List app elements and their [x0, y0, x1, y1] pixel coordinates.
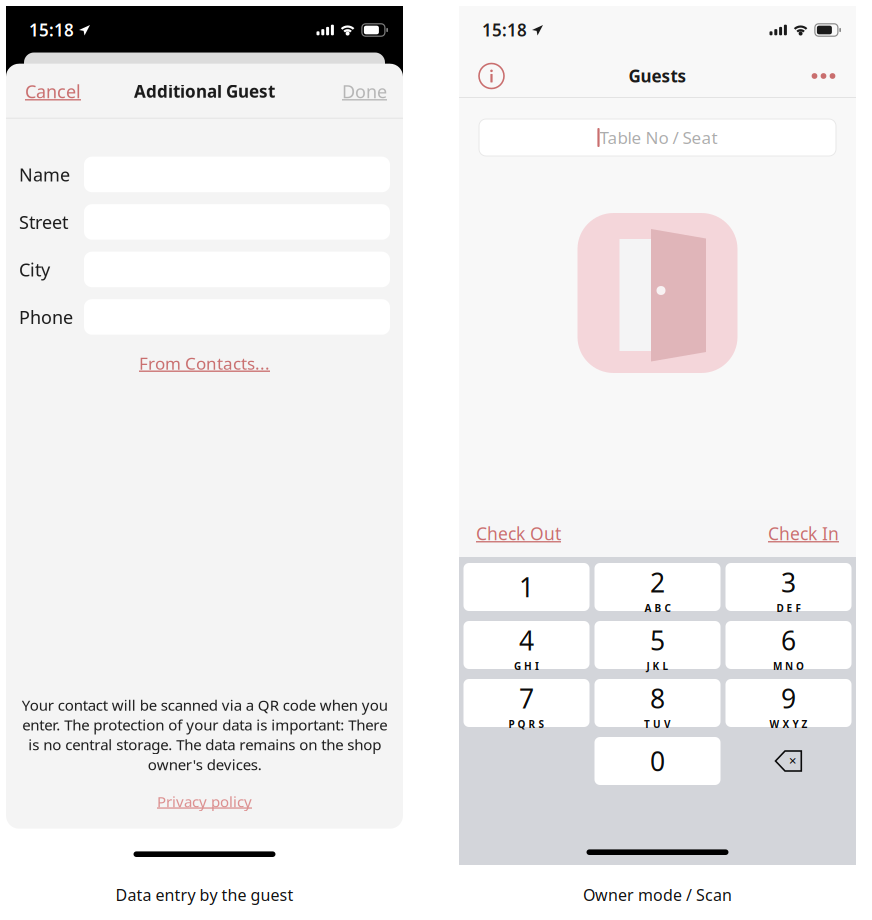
button[interactable]: More options: [810, 62, 837, 89]
staticText: 3: [781, 564, 796, 600]
staticText: 1: [519, 569, 534, 605]
button[interactable]: 4: [463, 621, 589, 669]
staticText: Check In: [768, 522, 839, 545]
button[interactable]: 0: [594, 737, 720, 785]
staticText: 6: [781, 622, 796, 658]
staticText: W X Y Z: [769, 717, 807, 731]
staticText: From Contacts...: [139, 352, 270, 375]
staticText: D E F: [776, 601, 800, 615]
staticText: 9: [781, 680, 796, 716]
button[interactable]: Information: [478, 62, 505, 89]
staticText: Additional Guest: [134, 80, 275, 103]
staticText: G H I: [514, 659, 539, 673]
staticText: ✕: [788, 755, 796, 767]
staticText: P Q R S: [508, 717, 544, 731]
staticText: Owner mode / Scan: [583, 884, 732, 906]
staticText: Guests: [628, 64, 686, 88]
button[interactable]: 7: [463, 679, 589, 727]
staticText: M N O: [773, 659, 804, 673]
staticText: 15:18: [29, 18, 74, 42]
staticText: Phone: [19, 305, 73, 329]
staticText: Table No / Seat: [600, 126, 718, 149]
button[interactable]: 5: [594, 621, 720, 669]
staticText: A B C: [644, 601, 670, 615]
staticText: Check Out: [476, 522, 561, 545]
button[interactable]: 3: [725, 563, 851, 611]
staticText: Your contact will be scanned via a QR co…: [21, 695, 387, 774]
staticText: Street: [19, 210, 68, 234]
staticText: Data entry by the guest: [115, 884, 293, 906]
button[interactable]: 2: [594, 563, 720, 611]
staticText: 8: [650, 680, 665, 716]
button[interactable]: Check Out: [475, 513, 561, 554]
button[interactable]: Cancel: [25, 69, 87, 113]
button[interactable]: From Contacts...: [133, 347, 276, 380]
staticText: 7: [519, 680, 534, 716]
staticText: Cancel: [25, 79, 81, 103]
button[interactable]: 8: [594, 679, 720, 727]
staticText: 0: [650, 743, 665, 779]
staticText: T U V: [644, 717, 671, 731]
staticText: J K L: [646, 659, 668, 673]
button[interactable]: Privacy policy: [151, 786, 258, 817]
button[interactable]: Delete: [725, 737, 851, 785]
staticText: 5: [650, 622, 665, 658]
button[interactable]: 6: [725, 621, 851, 669]
staticText: Privacy policy: [157, 791, 252, 812]
button[interactable]: 9: [725, 679, 851, 727]
staticText: Done: [342, 79, 387, 103]
button[interactable]: Done: [336, 69, 387, 113]
staticText: Name: [19, 162, 70, 187]
button[interactable]: Check In: [768, 513, 840, 554]
staticText: 2: [650, 564, 665, 600]
staticText: 4: [519, 622, 534, 658]
staticText: City: [19, 257, 50, 282]
staticText: 15:18: [482, 18, 527, 42]
button[interactable]: 1: [463, 563, 589, 611]
